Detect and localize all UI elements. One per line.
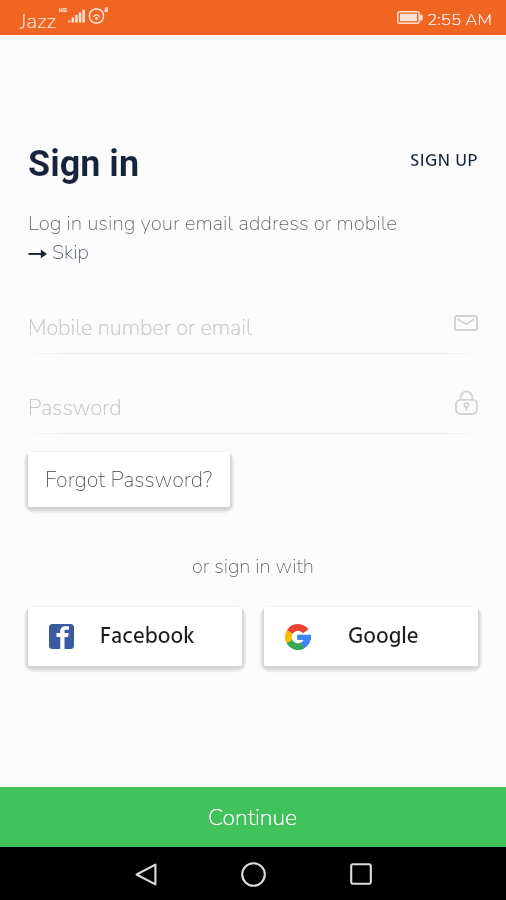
button[interactable]: SIGN UP — [408, 139, 480, 184]
button[interactable]: Facebook — [28, 607, 242, 666]
staticText: 2:55 AM — [427, 8, 492, 31]
other: Password — [455, 391, 478, 415]
button[interactable]: Mobile number or email — [28, 309, 478, 354]
staticText: Google — [348, 619, 419, 655]
staticText: Password — [28, 393, 122, 423]
button[interactable]: Continue — [0, 787, 506, 847]
staticText: SIGN UP — [410, 147, 478, 176]
button[interactable]: Password — [28, 389, 478, 434]
button[interactable]: Skip — [28, 239, 89, 266]
staticText: Continue — [208, 802, 298, 833]
staticText: or sign in with — [192, 553, 314, 580]
other: Email — [454, 315, 478, 331]
staticText: Jazz — [20, 7, 57, 36]
button[interactable]: Forgot Password? — [28, 452, 230, 507]
staticText: Sign in — [28, 143, 140, 185]
staticText: Facebook — [100, 619, 195, 655]
staticText: Log in using your email address or mobil… — [28, 209, 398, 237]
button[interactable]: Google — [264, 607, 478, 666]
button[interactable]: Recent apps — [335, 848, 387, 900]
staticText: Mobile number or email — [28, 313, 252, 343]
button[interactable]: Back — [120, 848, 172, 900]
staticText: Skip — [52, 239, 89, 266]
button[interactable]: Home — [227, 848, 279, 900]
staticText: Forgot Password? — [45, 465, 213, 494]
